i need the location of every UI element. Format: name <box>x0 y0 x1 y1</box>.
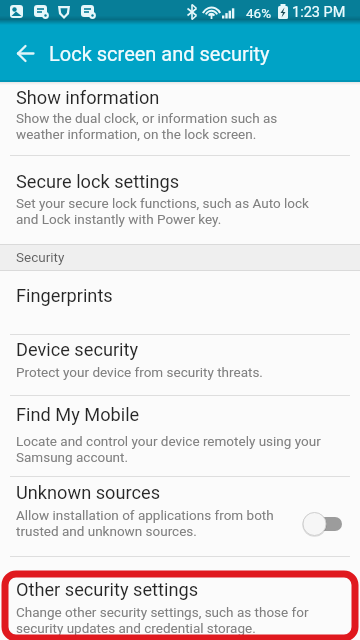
button[interactable] <box>0 557 360 640</box>
button[interactable] <box>0 477 360 556</box>
button[interactable] <box>0 82 360 155</box>
button[interactable] <box>0 396 360 476</box>
button[interactable]: Lock screen and security <box>0 25 360 82</box>
button[interactable] <box>0 334 360 395</box>
staticText: Unknown sources <box>16 482 161 503</box>
staticText: Device security <box>16 339 139 360</box>
staticText: 46% <box>246 5 272 21</box>
button[interactable] <box>0 156 360 244</box>
staticText: 1:23 PM <box>292 4 346 21</box>
staticText: Set your secure lock functions, such as … <box>16 195 309 227</box>
staticText: Locate and control your device remotely … <box>16 433 321 465</box>
staticText: Secure lock settings <box>16 171 180 192</box>
staticText: Show information <box>16 87 160 108</box>
staticText: Find My Mobile <box>16 404 140 425</box>
staticText: Lock screen and security <box>49 42 270 65</box>
button[interactable] <box>0 271 360 334</box>
staticText: Show the dual clock, or information such… <box>16 110 278 142</box>
staticText: Other security settings <box>16 579 199 600</box>
staticText: Allow installation of applications from … <box>16 507 274 539</box>
button[interactable] <box>300 510 346 538</box>
staticText: Security <box>16 249 65 265</box>
staticText: Fingerprints <box>16 285 113 306</box>
staticText: Change other security settings, such as … <box>16 604 309 636</box>
staticText: Protect your device from security threat… <box>16 364 263 380</box>
